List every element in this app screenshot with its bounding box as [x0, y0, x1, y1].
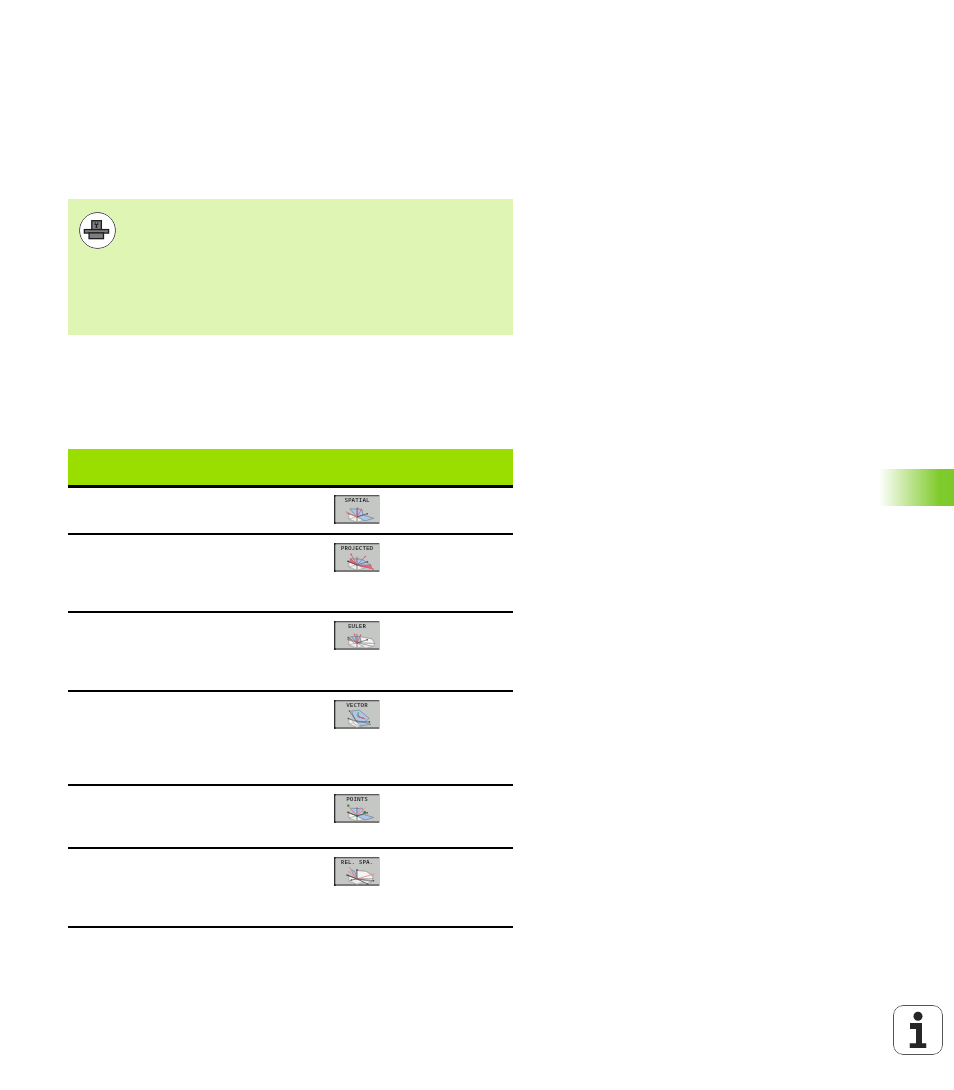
button[interactable]: EULER softkey [334, 621, 380, 650]
button[interactable]: POINTS softkey [334, 794, 380, 823]
button[interactable]: SPATIAL softkey [334, 495, 380, 524]
staticText: VECTOR [334, 701, 380, 709]
button[interactable]: VECTOR softkey [334, 700, 380, 729]
staticText: EULER [334, 622, 380, 630]
button[interactable]: PROJECTED softkey [334, 543, 380, 572]
button[interactable]: Info [893, 1005, 943, 1055]
staticText: SPATIAL [334, 496, 380, 504]
button[interactable]: REL. SPA. softkey [334, 857, 380, 886]
staticText: PROJECTED [334, 544, 380, 552]
staticText: REL. SPA. [334, 858, 380, 866]
staticText: POINTS [334, 795, 380, 803]
other: Machine manual note [79, 212, 116, 249]
